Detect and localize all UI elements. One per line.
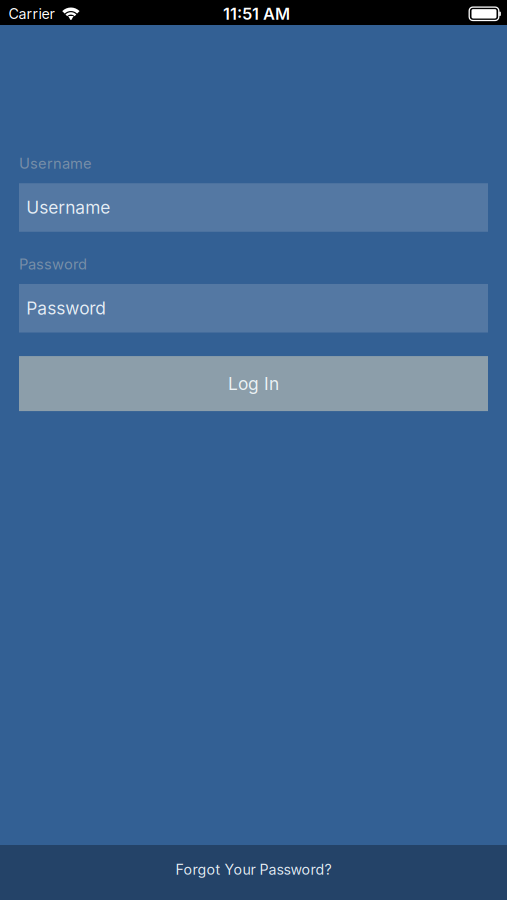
staticText: Username bbox=[26, 197, 110, 218]
staticText: Log In bbox=[228, 373, 279, 394]
button[interactable]: Log In bbox=[19, 356, 488, 411]
staticText: Password bbox=[19, 255, 87, 273]
staticText: Username bbox=[19, 154, 92, 172]
button[interactable]: Username bbox=[19, 183, 488, 232]
staticText: 11:51 AM bbox=[223, 4, 290, 24]
staticText: Forgot Your Password? bbox=[175, 861, 331, 878]
button[interactable]: Forgot Your Password? bbox=[0, 845, 507, 900]
button[interactable]: Password bbox=[19, 284, 488, 332]
staticText: Carrier bbox=[9, 5, 55, 22]
staticText: Password bbox=[26, 298, 106, 319]
